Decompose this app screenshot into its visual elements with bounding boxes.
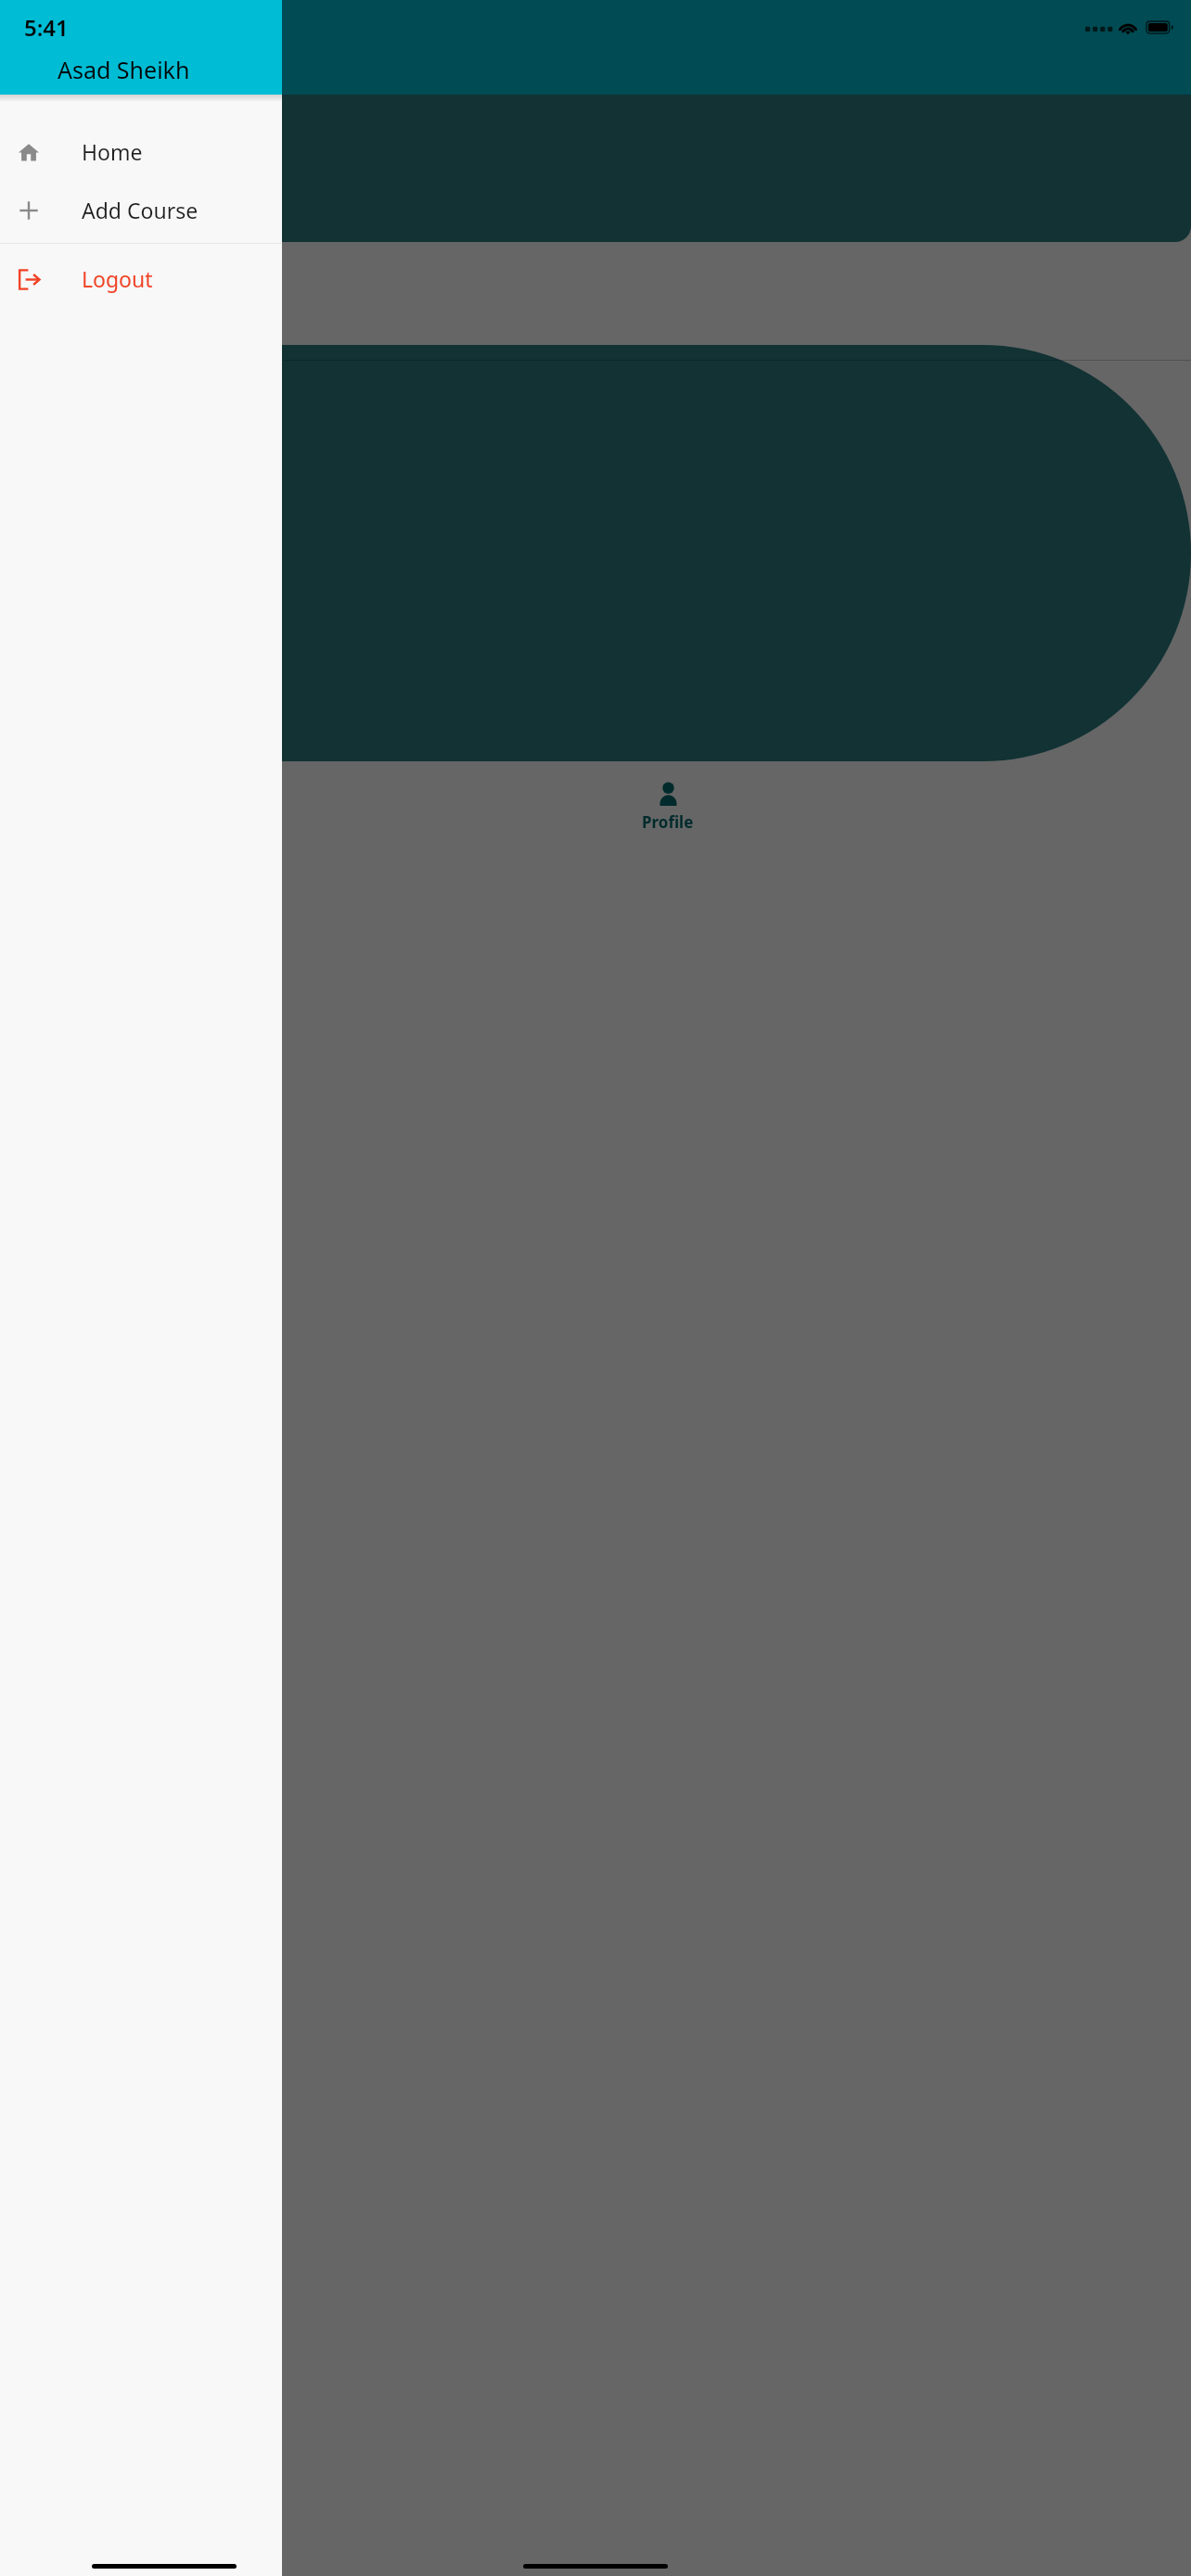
button[interactable]: Home <box>0 122 282 181</box>
staticText: Logout <box>82 264 153 293</box>
staticText: Asad Sheikh <box>58 54 190 85</box>
button[interactable]: Close navigation drawer <box>0 0 1191 2576</box>
button[interactable]: Logout <box>0 249 282 308</box>
staticText: 5:41 <box>24 12 69 43</box>
staticText: Add Course <box>82 196 198 224</box>
staticText: Home <box>82 137 143 166</box>
button[interactable]: Profile <box>642 780 694 833</box>
button[interactable]: Add Course <box>0 181 282 239</box>
staticText: 5:41 <box>24 12 69 43</box>
staticText: Profile <box>642 811 694 833</box>
